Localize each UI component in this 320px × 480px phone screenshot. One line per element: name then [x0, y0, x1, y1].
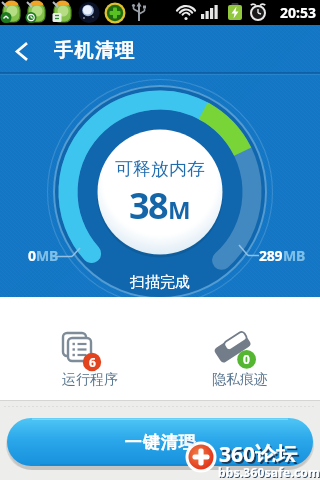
button[interactable]: 6 — [54, 315, 126, 395]
staticText: 360论坛 — [219, 440, 298, 462]
staticText: 38 — [129, 181, 168, 219]
button[interactable]: 一键清理 — [7, 418, 313, 466]
staticText: MB — [283, 246, 305, 265]
staticText: MB — [36, 246, 58, 265]
staticText: 6 — [89, 354, 96, 370]
button[interactable]: 0 — [204, 315, 276, 395]
staticText: 手机清理 — [53, 39, 135, 61]
button[interactable] — [4, 31, 40, 69]
staticText: 隐私痕迹 — [212, 371, 268, 389]
staticText: bbs.360safe.com — [219, 465, 320, 479]
staticText: 运行程序 — [62, 371, 118, 389]
staticText: 一键清理 — [124, 432, 196, 453]
staticText: bbs.360safe.com — [218, 464, 320, 478]
staticText: 0 — [28, 246, 36, 265]
staticText: 扫描完成 — [130, 273, 190, 292]
staticText: 0 — [243, 351, 250, 367]
staticText: M — [168, 193, 191, 226]
staticText: 可释放内存 — [115, 158, 205, 180]
staticText: 360论坛 — [221, 442, 300, 464]
staticText: 289 — [259, 246, 283, 265]
staticText: 20:53 — [280, 3, 316, 22]
